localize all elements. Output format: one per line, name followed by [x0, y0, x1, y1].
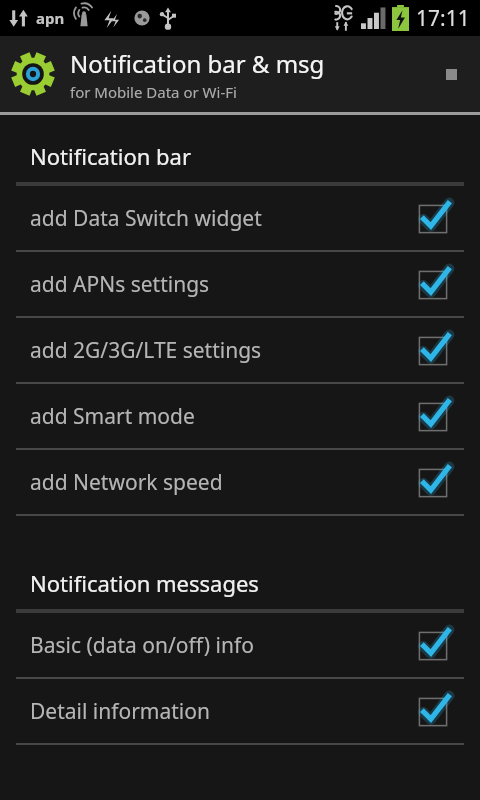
- button[interactable]: Overflow menu: [434, 57, 468, 91]
- button[interactable]: add Network speed: [0, 450, 480, 514]
- button[interactable]: add Data Switch widget: [0, 186, 480, 250]
- staticText: Detail information: [30, 697, 210, 726]
- staticText: Notification bar: [30, 141, 191, 171]
- button[interactable]: Basic (data on/off) info: [0, 613, 480, 677]
- staticText: 17:11: [416, 4, 470, 33]
- button[interactable]: add Smart mode: [0, 384, 480, 448]
- staticText: apn: [36, 8, 65, 28]
- staticText: add Network speed: [30, 468, 223, 497]
- staticText: Basic (data on/off) info: [30, 631, 254, 660]
- staticText: Notification messages: [30, 568, 259, 598]
- staticText: add APNs settings: [30, 270, 210, 299]
- button[interactable]: Detail information: [0, 679, 480, 743]
- staticText: Notification bar & msg: [70, 47, 325, 80]
- staticText: add 2G/3G/LTE settings: [30, 336, 262, 365]
- button[interactable]: add 2G/3G/LTE settings: [0, 318, 480, 382]
- staticText: add Smart mode: [30, 402, 195, 431]
- staticText: add Data Switch widget: [30, 204, 262, 233]
- button[interactable]: add APNs settings: [0, 252, 480, 316]
- staticText: for Mobile Data or Wi-Fi: [70, 82, 237, 102]
